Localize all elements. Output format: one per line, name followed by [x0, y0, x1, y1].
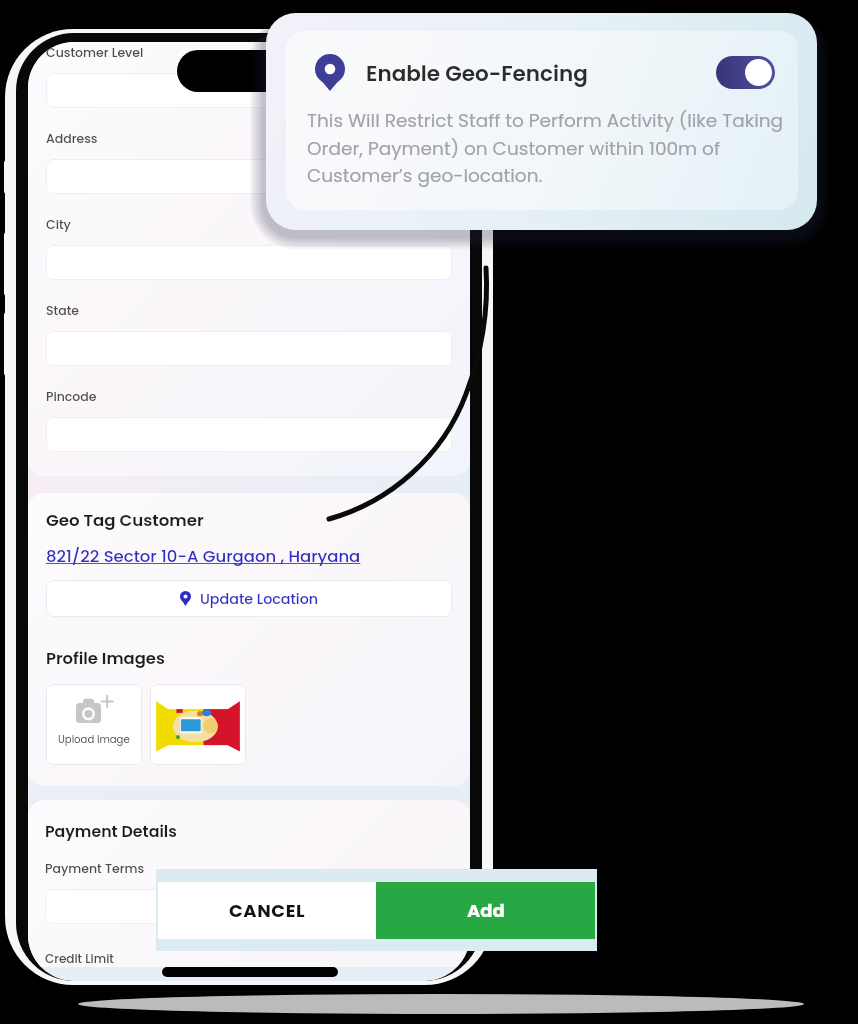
staticText: Pincode [46, 388, 97, 405]
staticText: CANCEL [229, 898, 306, 923]
staticText: Payment Details [45, 820, 177, 842]
staticText: Profile Images [46, 647, 165, 670]
button[interactable] [46, 245, 452, 280]
staticText: Enable Geo-Fencing [366, 58, 588, 88]
button[interactable]: 821/22 Sector 10-A Gurgaon , Haryana [46, 545, 361, 568]
staticText: This Will Restrict Staff to Perform Acti… [307, 108, 785, 188]
button[interactable]: Enable Geo-Fencing toggle, on [716, 56, 775, 89]
staticText: Upload Image [58, 732, 130, 746]
button[interactable] [46, 73, 452, 108]
staticText: Credit Limit [45, 950, 114, 967]
staticText: Payment Terms [45, 860, 145, 877]
button[interactable]: Update Location [46, 580, 452, 617]
button[interactable] [46, 159, 452, 194]
staticText: State [46, 302, 80, 319]
staticText: Address [46, 130, 98, 147]
staticText: Update Location [200, 589, 319, 609]
staticText: Geo Tag Customer [46, 509, 204, 532]
button[interactable] [46, 417, 452, 452]
button[interactable]: Upload Image [46, 684, 142, 765]
staticText: Customer Level [46, 44, 144, 61]
button[interactable]: Add [376, 882, 595, 939]
staticText: City [46, 216, 71, 233]
button[interactable] [150, 684, 246, 765]
button[interactable] [46, 331, 452, 366]
button[interactable]: CANCEL [158, 882, 376, 939]
button[interactable] [45, 889, 453, 924]
staticText: Add [467, 898, 505, 923]
